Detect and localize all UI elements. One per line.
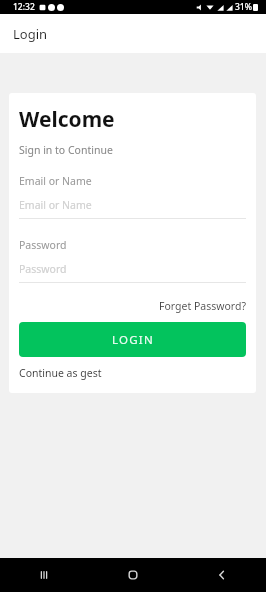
staticText: Login xyxy=(13,25,48,43)
button[interactable]: Home xyxy=(88,558,177,592)
button[interactable]: Email or Name xyxy=(19,198,246,212)
button[interactable]: LOGIN xyxy=(19,322,246,357)
staticText: 31% xyxy=(235,1,252,13)
staticText: Email or Name xyxy=(19,198,92,212)
staticText: LOGIN xyxy=(112,332,154,348)
button[interactable]: Continue as gest xyxy=(19,366,102,380)
staticText: 12:32 xyxy=(13,1,35,13)
button[interactable]: Recent apps xyxy=(0,558,88,592)
button[interactable]: Password xyxy=(19,262,246,276)
staticText: Password xyxy=(19,238,67,252)
staticText: Welcome xyxy=(19,105,115,134)
staticText: Password xyxy=(19,262,67,276)
button[interactable]: Back xyxy=(177,558,266,592)
staticText: Sign in to Continue xyxy=(19,143,113,157)
button[interactable]: Forget Password? xyxy=(159,299,246,313)
staticText: Email or Name xyxy=(19,174,92,188)
